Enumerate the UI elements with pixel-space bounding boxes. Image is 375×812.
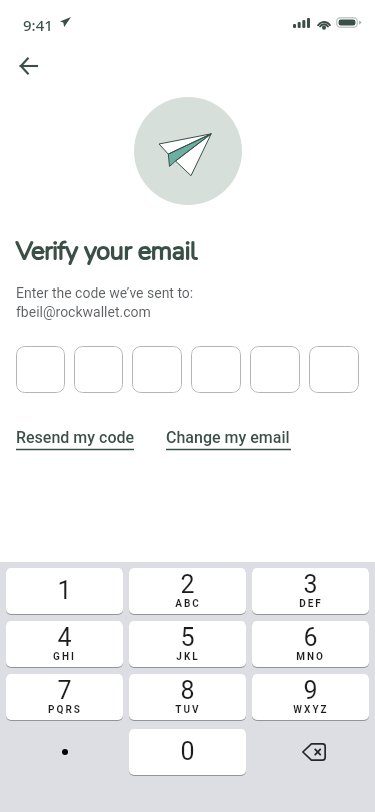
staticText: 2 [180,570,195,599]
button[interactable]: 4 [6,621,123,667]
staticText: 9 [303,676,318,705]
staticText: PQRS [48,704,82,716]
staticText: JKL [176,651,200,663]
button[interactable] [309,346,359,393]
staticText: fbeil@rockwallet.com [16,304,151,320]
button[interactable] [250,346,300,393]
staticText: 0 [180,737,195,766]
button[interactable] [74,346,123,393]
staticText: ABC [175,598,201,610]
button[interactable]: Back [8,46,48,86]
staticText: GHI [53,651,76,663]
staticText: 8 [180,676,195,705]
button[interactable]: 0 [129,729,246,775]
staticText: 9:41 [23,15,53,35]
staticText: 3 [303,570,318,599]
button[interactable]: 9 [252,674,369,720]
staticText: WXYZ [293,704,329,716]
button[interactable]: 8 [129,674,246,720]
button[interactable]: Backspace [252,729,369,775]
button[interactable]: 6 [252,621,369,667]
button[interactable]: 7 [6,674,123,720]
button[interactable]: 1 [6,568,123,614]
button[interactable] [16,346,65,393]
staticText: 7 [57,676,72,705]
button[interactable]: Change my email [166,428,295,454]
staticText: Verify your email [16,234,198,268]
staticText: TUV [175,704,201,716]
staticText: 1 [57,576,72,605]
staticText: Verify your email [16,234,198,268]
button[interactable] [191,346,241,393]
staticText: 6 [303,623,318,652]
button[interactable] [132,346,182,393]
button[interactable]: 5 [129,621,246,667]
button[interactable]: Resend my code [16,428,138,454]
staticText: Resend my code [16,428,135,447]
staticText: 5 [180,623,195,652]
staticText: DEF [299,598,323,610]
button[interactable]: 2 [129,568,246,614]
staticText: 4 [57,623,72,652]
button[interactable]: 3 [252,568,369,614]
staticText: Change my email [166,428,290,447]
staticText: Enter the code we’ve sent to: [16,285,194,301]
staticText: MNO [296,651,325,663]
button[interactable]: Decimal point [6,729,123,775]
